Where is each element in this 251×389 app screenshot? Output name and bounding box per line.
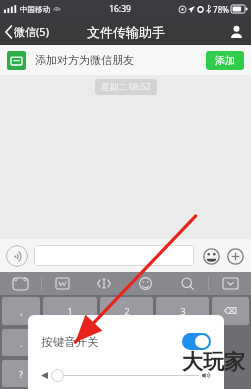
staticText: , [20,305,23,317]
button[interactable]: 8 [100,360,153,387]
button[interactable]: 3 [156,297,209,325]
button[interactable]: 9 [156,360,209,387]
button[interactable]: 5 [100,329,153,356]
button[interactable]: ? [2,360,40,387]
staticText: 6 [180,337,186,349]
button[interactable]: Emoticon [124,272,166,295]
staticText: 文件传输助手 [87,24,165,40]
staticText: 1 [67,305,73,317]
staticText: 78% [213,4,229,15]
staticText: 3 [180,305,186,317]
button[interactable] [34,245,194,266]
button[interactable]: 微信(5) [0,20,55,43]
button[interactable]: 1 [43,297,97,325]
button[interactable] [51,368,199,382]
button[interactable]: Voice input [6,245,28,267]
button[interactable]: Search [166,272,208,295]
staticText: 7 [67,368,73,380]
button[interactable]: Handwriting [42,272,83,295]
button[interactable]: 4 [43,329,97,356]
staticText: 添加对方为微信朋友 [35,53,134,67]
staticText: 16:39 [109,3,131,15]
button[interactable]: 2 [100,297,153,325]
staticText: 4 [67,337,73,349]
button[interactable]: 添加 [206,51,244,70]
button[interactable]: More options [225,246,245,266]
staticText: 微信(5) [14,24,49,39]
staticText: 9 [180,368,186,380]
button[interactable]: Cursor [83,272,124,295]
button[interactable]: . [2,329,40,356]
button[interactable] [212,329,249,356]
button[interactable]: 按键音开关 [41,333,211,350]
button[interactable] [212,360,249,387]
staticText: 8 [124,368,130,380]
staticText: 大玩家 [182,349,245,375]
button[interactable]: ⌫ [212,297,249,325]
button[interactable]: Emoji [201,246,221,266]
button[interactable]: Hide keyboard [209,272,251,295]
button[interactable]: 7 [43,360,97,387]
staticText: 按键音开关 [41,335,99,349]
staticText: . [20,337,23,349]
staticText: 2 [124,305,130,317]
staticText: ⌫ [224,306,237,316]
staticText: 星期二 08:52 [101,81,151,93]
button[interactable]: Baidu IME [0,272,41,295]
button[interactable]: , [2,297,40,325]
staticText: 添加 [215,54,235,67]
staticText: ? [19,368,23,380]
button[interactable]: 6 [156,329,209,356]
staticText: 中国移动 [20,5,50,14]
button[interactable]: Contact profile [222,21,251,42]
